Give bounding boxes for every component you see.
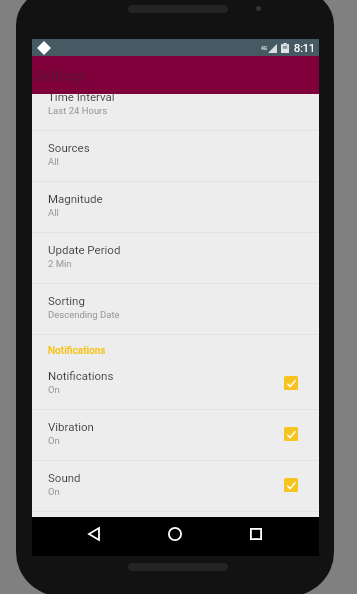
staticText: Notifications: [48, 345, 106, 357]
button[interactable]: Sources: [32, 131, 319, 181]
staticText: On: [48, 435, 60, 446]
button[interactable]: Vibration: [32, 410, 319, 460]
button[interactable]: Recents: [240, 518, 272, 550]
staticText: Notifications: [48, 369, 114, 382]
button[interactable]: Time Interval: [32, 80, 319, 130]
staticText: Settings: [34, 68, 86, 84]
staticText: Last 24 Hours: [48, 105, 108, 116]
staticText: On: [48, 486, 60, 497]
staticText: 2 Min: [48, 258, 72, 269]
button[interactable]: Toggle Sound: [284, 478, 298, 492]
staticText: Update Period: [48, 243, 121, 256]
staticText: Sound: [48, 471, 81, 484]
staticText: All: [48, 207, 59, 218]
staticText: Vibration: [48, 420, 94, 433]
button[interactable]: Sorting: [32, 284, 319, 334]
staticText: Sources: [48, 141, 90, 154]
staticText: On: [48, 384, 60, 395]
button[interactable]: Home: [159, 518, 191, 550]
button[interactable]: Back: [78, 518, 110, 550]
staticText: 4G: [261, 45, 268, 51]
button[interactable]: Notifications: [32, 359, 319, 409]
button[interactable]: Sound: [32, 461, 319, 511]
button[interactable]: Update Period: [32, 233, 319, 283]
button[interactable]: Toggle Notifications: [284, 376, 298, 390]
staticText: Sorting: [48, 294, 85, 307]
staticText: Magnitude: [48, 192, 103, 205]
staticText: Descending Date: [48, 309, 120, 320]
button[interactable]: Magnitude: [32, 182, 319, 232]
staticText: All: [48, 156, 59, 167]
staticText: Time Interval: [48, 90, 115, 103]
button[interactable]: Toggle Vibration: [284, 427, 298, 441]
staticText: 8:11: [294, 42, 316, 55]
